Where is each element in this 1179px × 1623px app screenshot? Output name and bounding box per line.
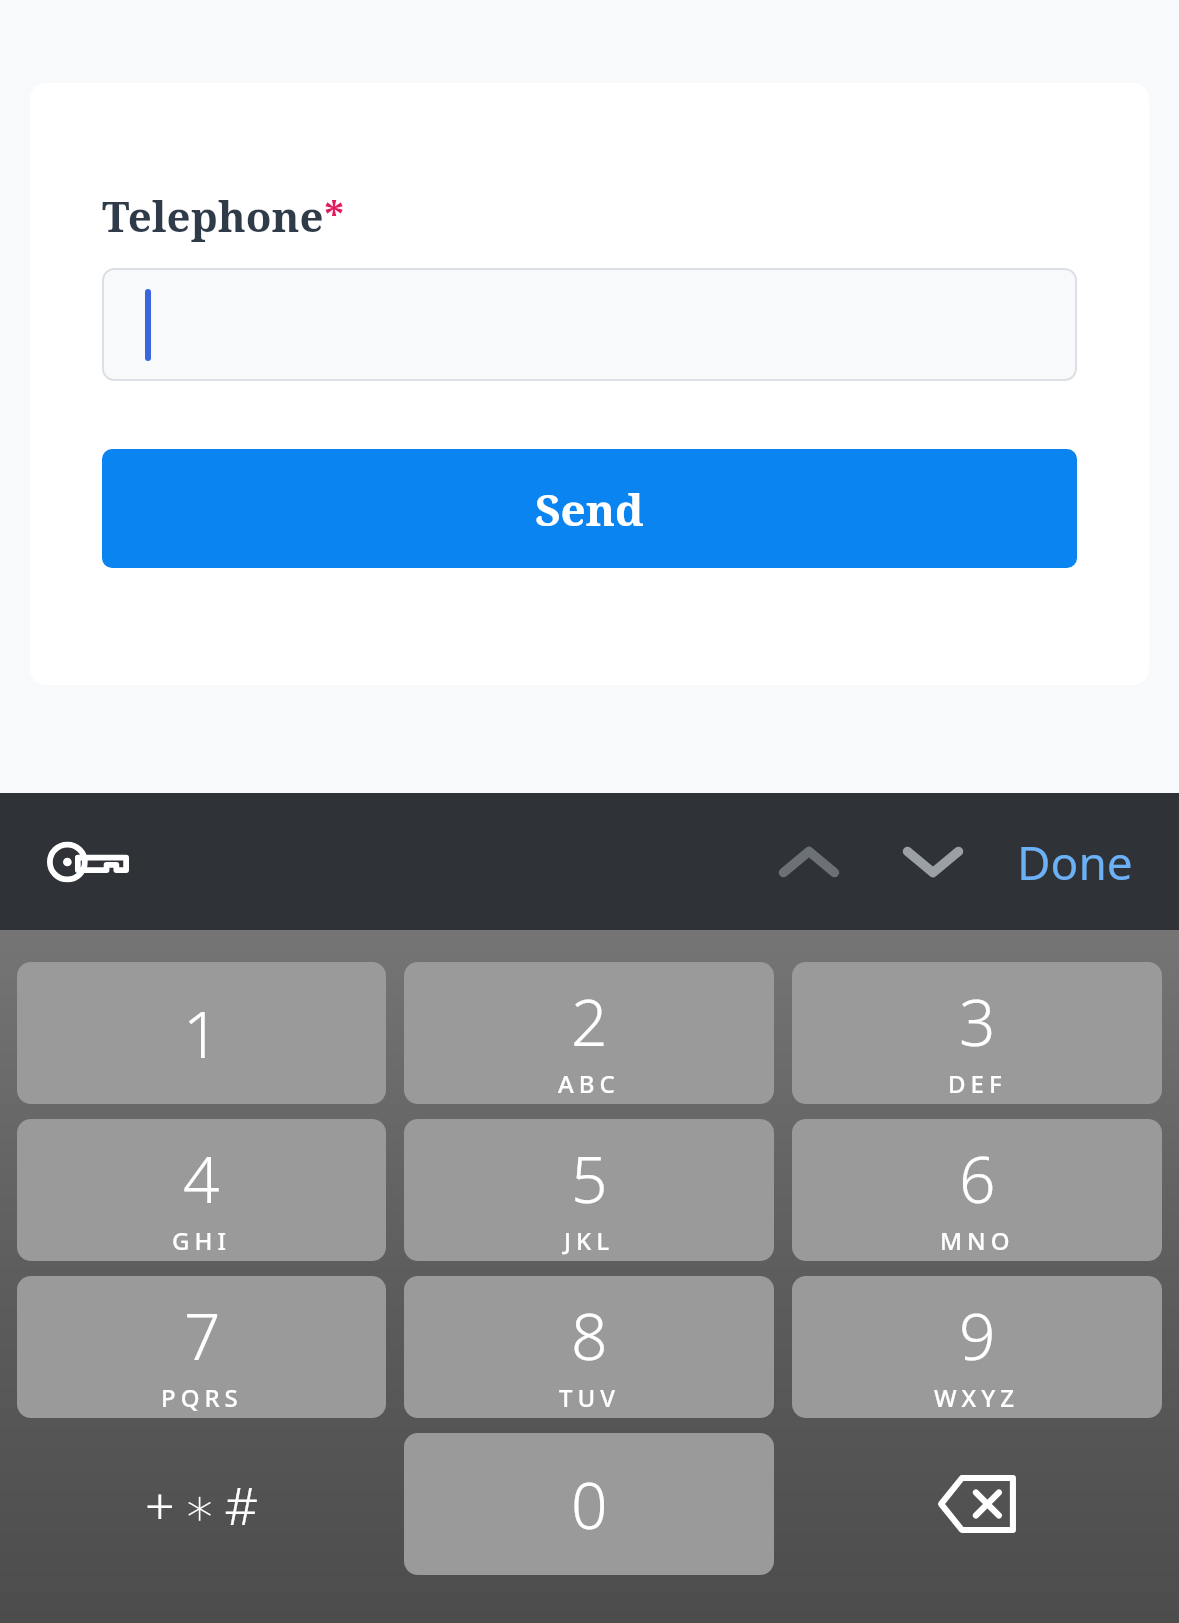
staticText: JKL	[564, 1224, 614, 1257]
staticText: WXYZ	[934, 1381, 1020, 1414]
staticText: ABC	[558, 1067, 620, 1100]
staticText: Send	[535, 479, 644, 539]
button[interactable]	[102, 268, 1077, 381]
button[interactable]: Passwords	[38, 824, 138, 900]
button[interactable]: 6	[792, 1119, 1162, 1261]
staticText: 3	[959, 978, 996, 1065]
staticText: 1	[183, 990, 220, 1077]
button[interactable]: 0	[404, 1433, 774, 1575]
button[interactable]: 8	[404, 1276, 774, 1418]
button[interactable]: 3	[792, 962, 1162, 1104]
button[interactable]: + ∗ #	[17, 1433, 386, 1575]
staticText: + ∗ #	[145, 1469, 259, 1540]
button[interactable]: 7	[17, 1276, 386, 1418]
button[interactable]: 4	[17, 1119, 386, 1261]
staticText: 4	[183, 1135, 220, 1222]
staticText: TUV	[559, 1381, 620, 1414]
staticText: 0	[571, 1461, 608, 1548]
staticText: 9	[959, 1292, 996, 1379]
button[interactable]: Next field	[883, 817, 983, 907]
staticText: 8	[571, 1292, 608, 1379]
button[interactable]: Previous field	[759, 817, 859, 907]
staticText: 6	[959, 1135, 996, 1222]
staticText: DEF	[948, 1067, 1007, 1100]
button[interactable]: 1	[17, 962, 386, 1104]
staticText: PQRS	[161, 1381, 243, 1414]
staticText: Done	[1017, 831, 1133, 894]
staticText: 7	[184, 1292, 221, 1379]
button[interactable]: Done	[1011, 819, 1139, 906]
staticText: MNO	[940, 1224, 1015, 1257]
staticText: 2	[571, 978, 608, 1065]
staticText: GHI	[172, 1224, 231, 1257]
button[interactable]: 9	[792, 1276, 1162, 1418]
button[interactable]: Send	[102, 449, 1077, 568]
staticText: 5	[571, 1135, 608, 1222]
button[interactable]: 2	[404, 962, 774, 1104]
staticText: Telephone	[102, 187, 324, 244]
button[interactable]: 5	[404, 1119, 774, 1261]
staticText: *	[324, 187, 345, 241]
button[interactable]: Backspace	[792, 1433, 1162, 1575]
